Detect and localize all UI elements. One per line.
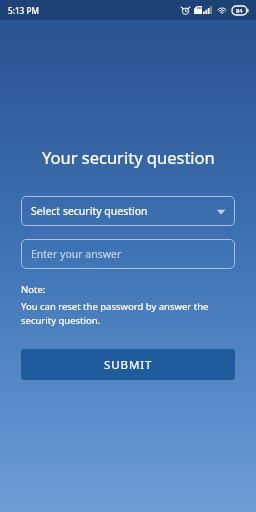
staticText: Select security question	[31, 204, 148, 218]
staticText: You can reset the password by answer the…	[21, 300, 235, 326]
staticText: 5:13 PM	[8, 5, 39, 16]
button[interactable]: Enter your answer	[21, 239, 235, 269]
other: Open security question list	[216, 207, 226, 216]
staticText: Your security question	[42, 146, 215, 168]
staticText: 84	[236, 7, 243, 15]
button[interactable]: SUBMIT	[21, 349, 235, 380]
button[interactable]: Select security question	[21, 196, 235, 226]
staticText: Note:	[21, 283, 46, 296]
staticText: Enter your answer	[31, 247, 122, 261]
staticText: SUBMIT	[104, 357, 153, 373]
